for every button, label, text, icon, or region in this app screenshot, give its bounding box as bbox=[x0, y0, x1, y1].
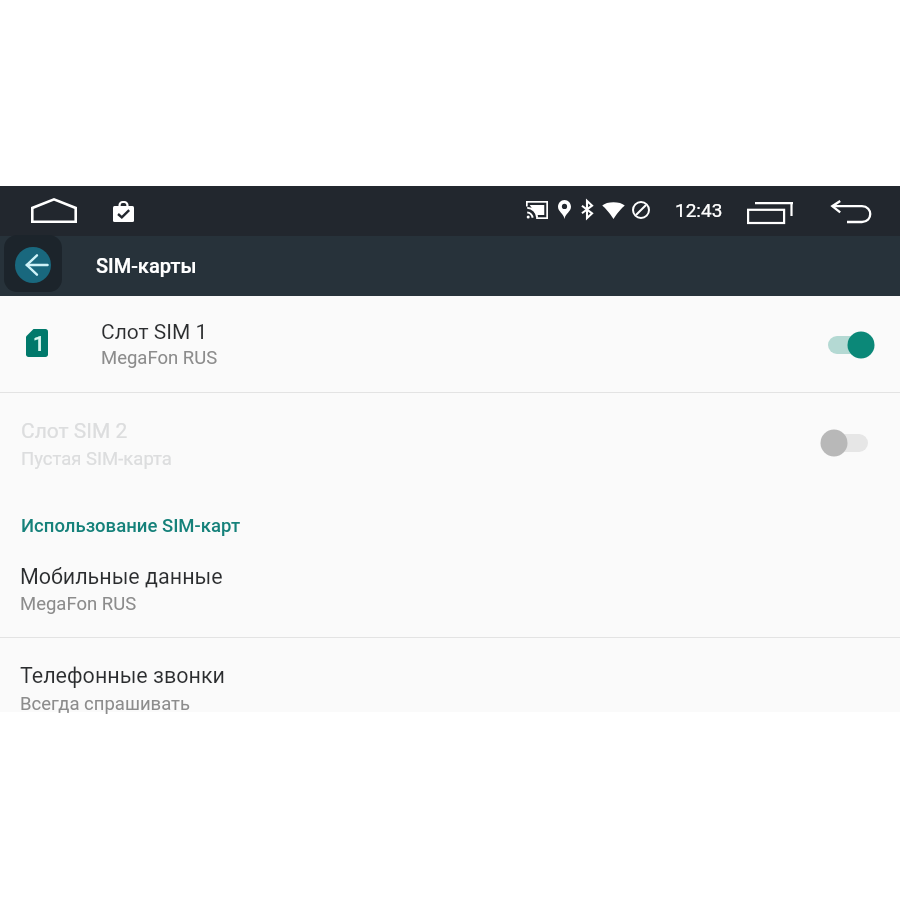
button[interactable]: SIM slot 1 enabled bbox=[820, 327, 876, 363]
staticText: SIM-карты bbox=[96, 254, 197, 277]
button[interactable]: Back bbox=[818, 188, 880, 234]
button[interactable]: Слот SIM 2 bbox=[0, 393, 900, 489]
button[interactable]: Work profile bbox=[103, 192, 143, 232]
staticText: Пустая SIM-карта bbox=[21, 448, 172, 470]
button[interactable]: 1 bbox=[0, 296, 900, 392]
staticText: 1 bbox=[33, 332, 45, 357]
button[interactable]: Home bbox=[30, 187, 77, 233]
staticText: Слот SIM 1 bbox=[101, 320, 208, 345]
staticText: MegaFon RUS bbox=[20, 593, 137, 615]
button[interactable]: Recent apps bbox=[735, 188, 797, 234]
staticText: Мобильные данные bbox=[20, 564, 223, 589]
staticText: MegaFon RUS bbox=[101, 347, 218, 369]
button[interactable]: SIM slot 2 disabled bbox=[820, 425, 876, 461]
button[interactable]: Navigate up bbox=[4, 235, 62, 292]
staticText: 12:43 bbox=[675, 199, 723, 221]
staticText: Использование SIM-карт bbox=[21, 515, 241, 537]
staticText: Телефонные звонки bbox=[20, 663, 226, 688]
staticText: Слот SIM 2 bbox=[21, 419, 128, 444]
staticText: Всегда спрашивать bbox=[20, 693, 191, 715]
button[interactable]: Мобильные данные bbox=[0, 546, 900, 637]
button[interactable]: Телефонные звонки bbox=[0, 638, 900, 712]
